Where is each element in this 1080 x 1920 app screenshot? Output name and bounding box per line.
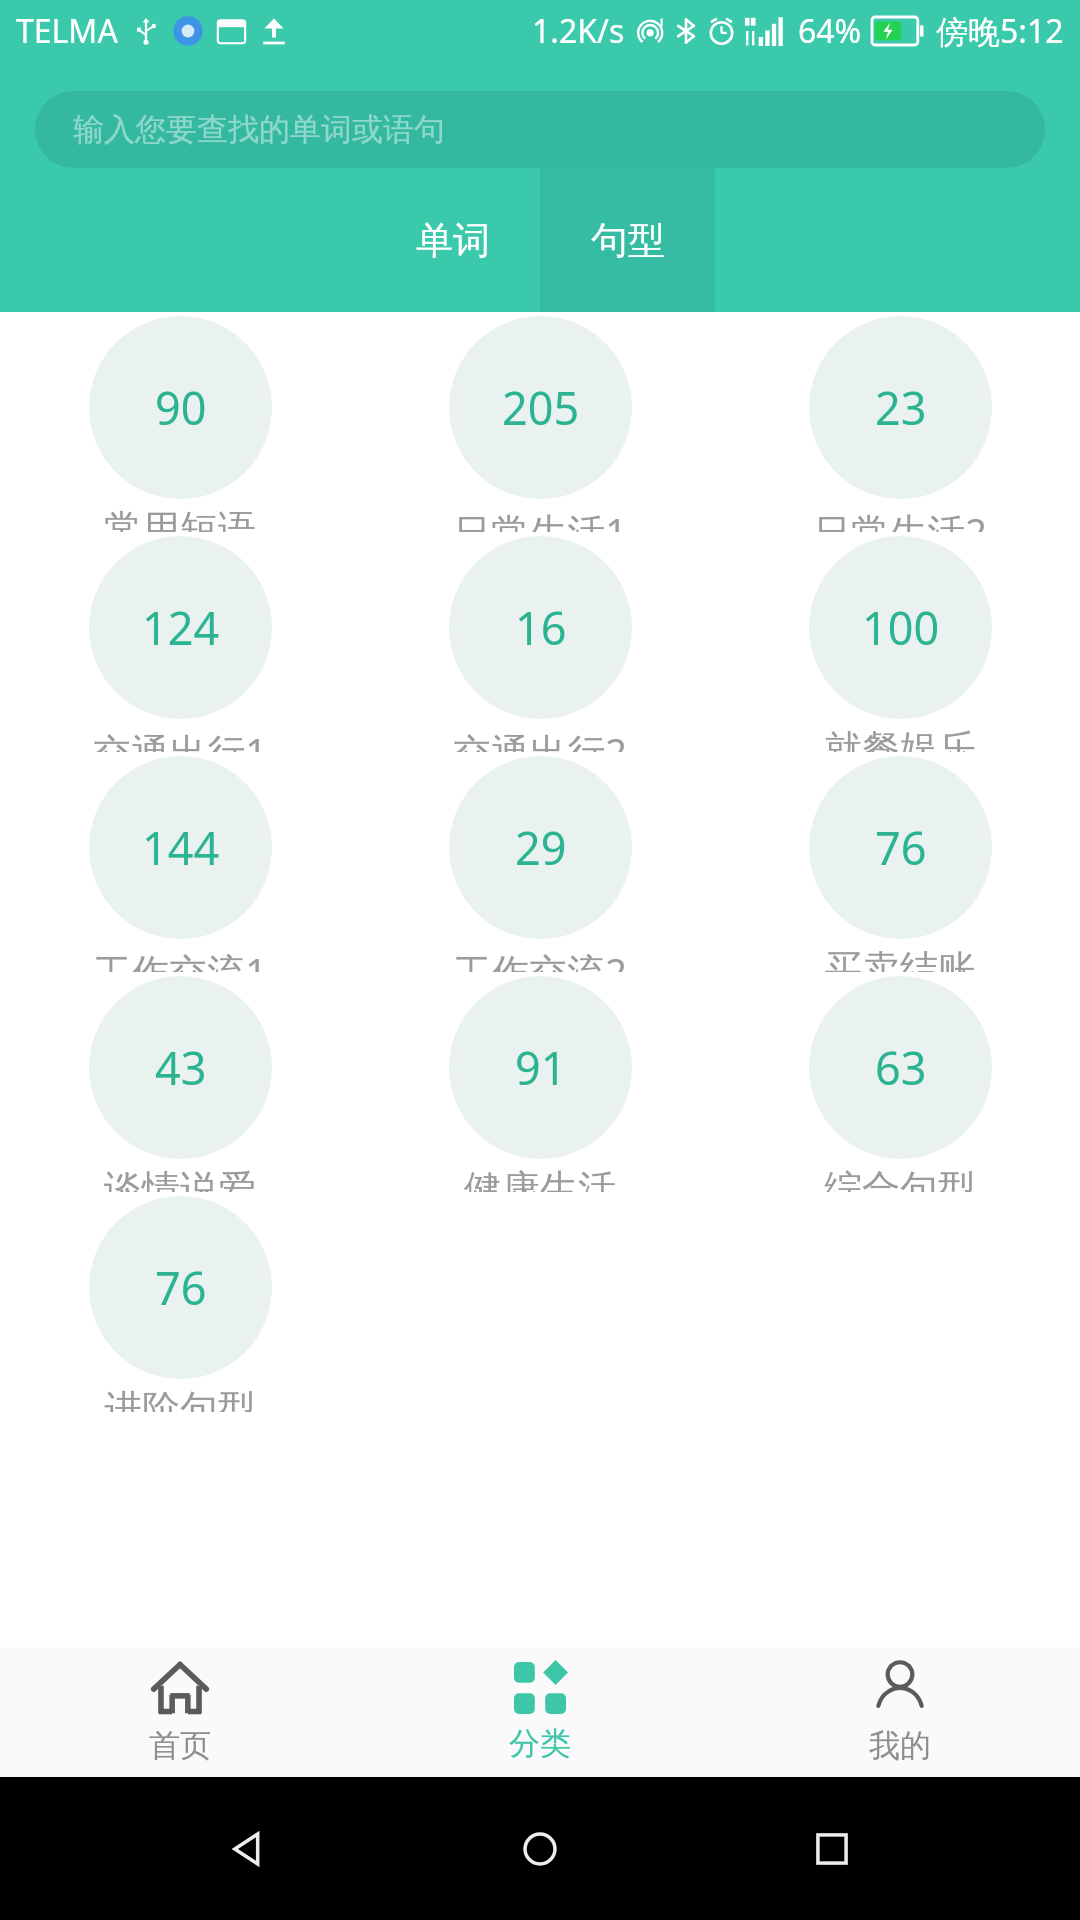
staticText: 买卖结账 [824,945,976,972]
staticText: 工作交流1 [93,945,267,972]
staticText: 单词 [416,217,490,264]
staticText: 交通出行2 [453,725,627,752]
staticText: 健康生活 [464,1165,616,1192]
button[interactable]: Home [496,1805,584,1893]
staticText: 交通出行1 [93,725,267,752]
staticText: 工作交流2 [453,945,627,972]
button[interactable]: 100 [780,532,1020,752]
staticText: 1.2K/s [532,9,625,53]
staticText: 首页 [149,1726,211,1765]
button[interactable]: 单词 [365,168,540,312]
staticText: 日常生活2 [813,505,987,532]
button[interactable]: 63 [780,972,1020,1192]
staticText: 常用短语 [104,505,256,532]
staticText: 76 [875,817,927,878]
button[interactable]: Categories [360,1647,720,1777]
button[interactable]: 91 [420,972,660,1192]
button[interactable]: 16 [420,532,660,752]
staticText: 句型 [591,217,665,264]
button[interactable]: 23 [780,312,1020,532]
button[interactable]: Back [204,1805,292,1893]
button[interactable]: 输入您要查找的单词或语句 [35,91,1045,168]
staticText: 16 [515,597,567,658]
button[interactable]: 76 [780,752,1020,972]
staticText: 205 [502,377,580,438]
staticText: 谈情说爱 [104,1165,256,1192]
button[interactable]: Home [0,1647,360,1777]
staticText: 傍晚5:12 [936,9,1064,53]
staticText: 就餐娱乐 [824,725,976,752]
staticText: 进阶句型 [104,1385,256,1412]
staticText: 分类 [509,1724,571,1763]
button[interactable]: 124 [60,532,300,752]
button[interactable]: 29 [420,752,660,972]
staticText: TELMA [16,9,118,53]
button[interactable]: 90 [60,312,300,532]
button[interactable]: 144 [60,752,300,972]
staticText: 日常生活1 [453,505,627,532]
staticText: 144 [142,817,220,878]
staticText: 43 [155,1037,207,1098]
staticText: 63 [875,1037,927,1098]
staticText: 我的 [869,1726,931,1765]
staticText: 124 [142,597,220,658]
button[interactable]: 205 [420,312,660,532]
button[interactable]: 43 [60,972,300,1192]
staticText: 91 [515,1037,567,1098]
staticText: 76 [155,1257,207,1318]
staticText: 64% [798,9,862,53]
staticText: 100 [862,597,940,658]
staticText: 29 [515,817,567,878]
staticText: 90 [155,377,207,438]
staticText: 综合句型 [824,1165,976,1192]
button[interactable]: 句型 [540,168,715,312]
button[interactable]: Recents [788,1805,876,1893]
staticText: 输入您要查找的单词或语句 [73,110,445,149]
button[interactable]: Profile [720,1647,1080,1777]
staticText: 23 [875,377,927,438]
button[interactable]: 76 [60,1192,300,1412]
